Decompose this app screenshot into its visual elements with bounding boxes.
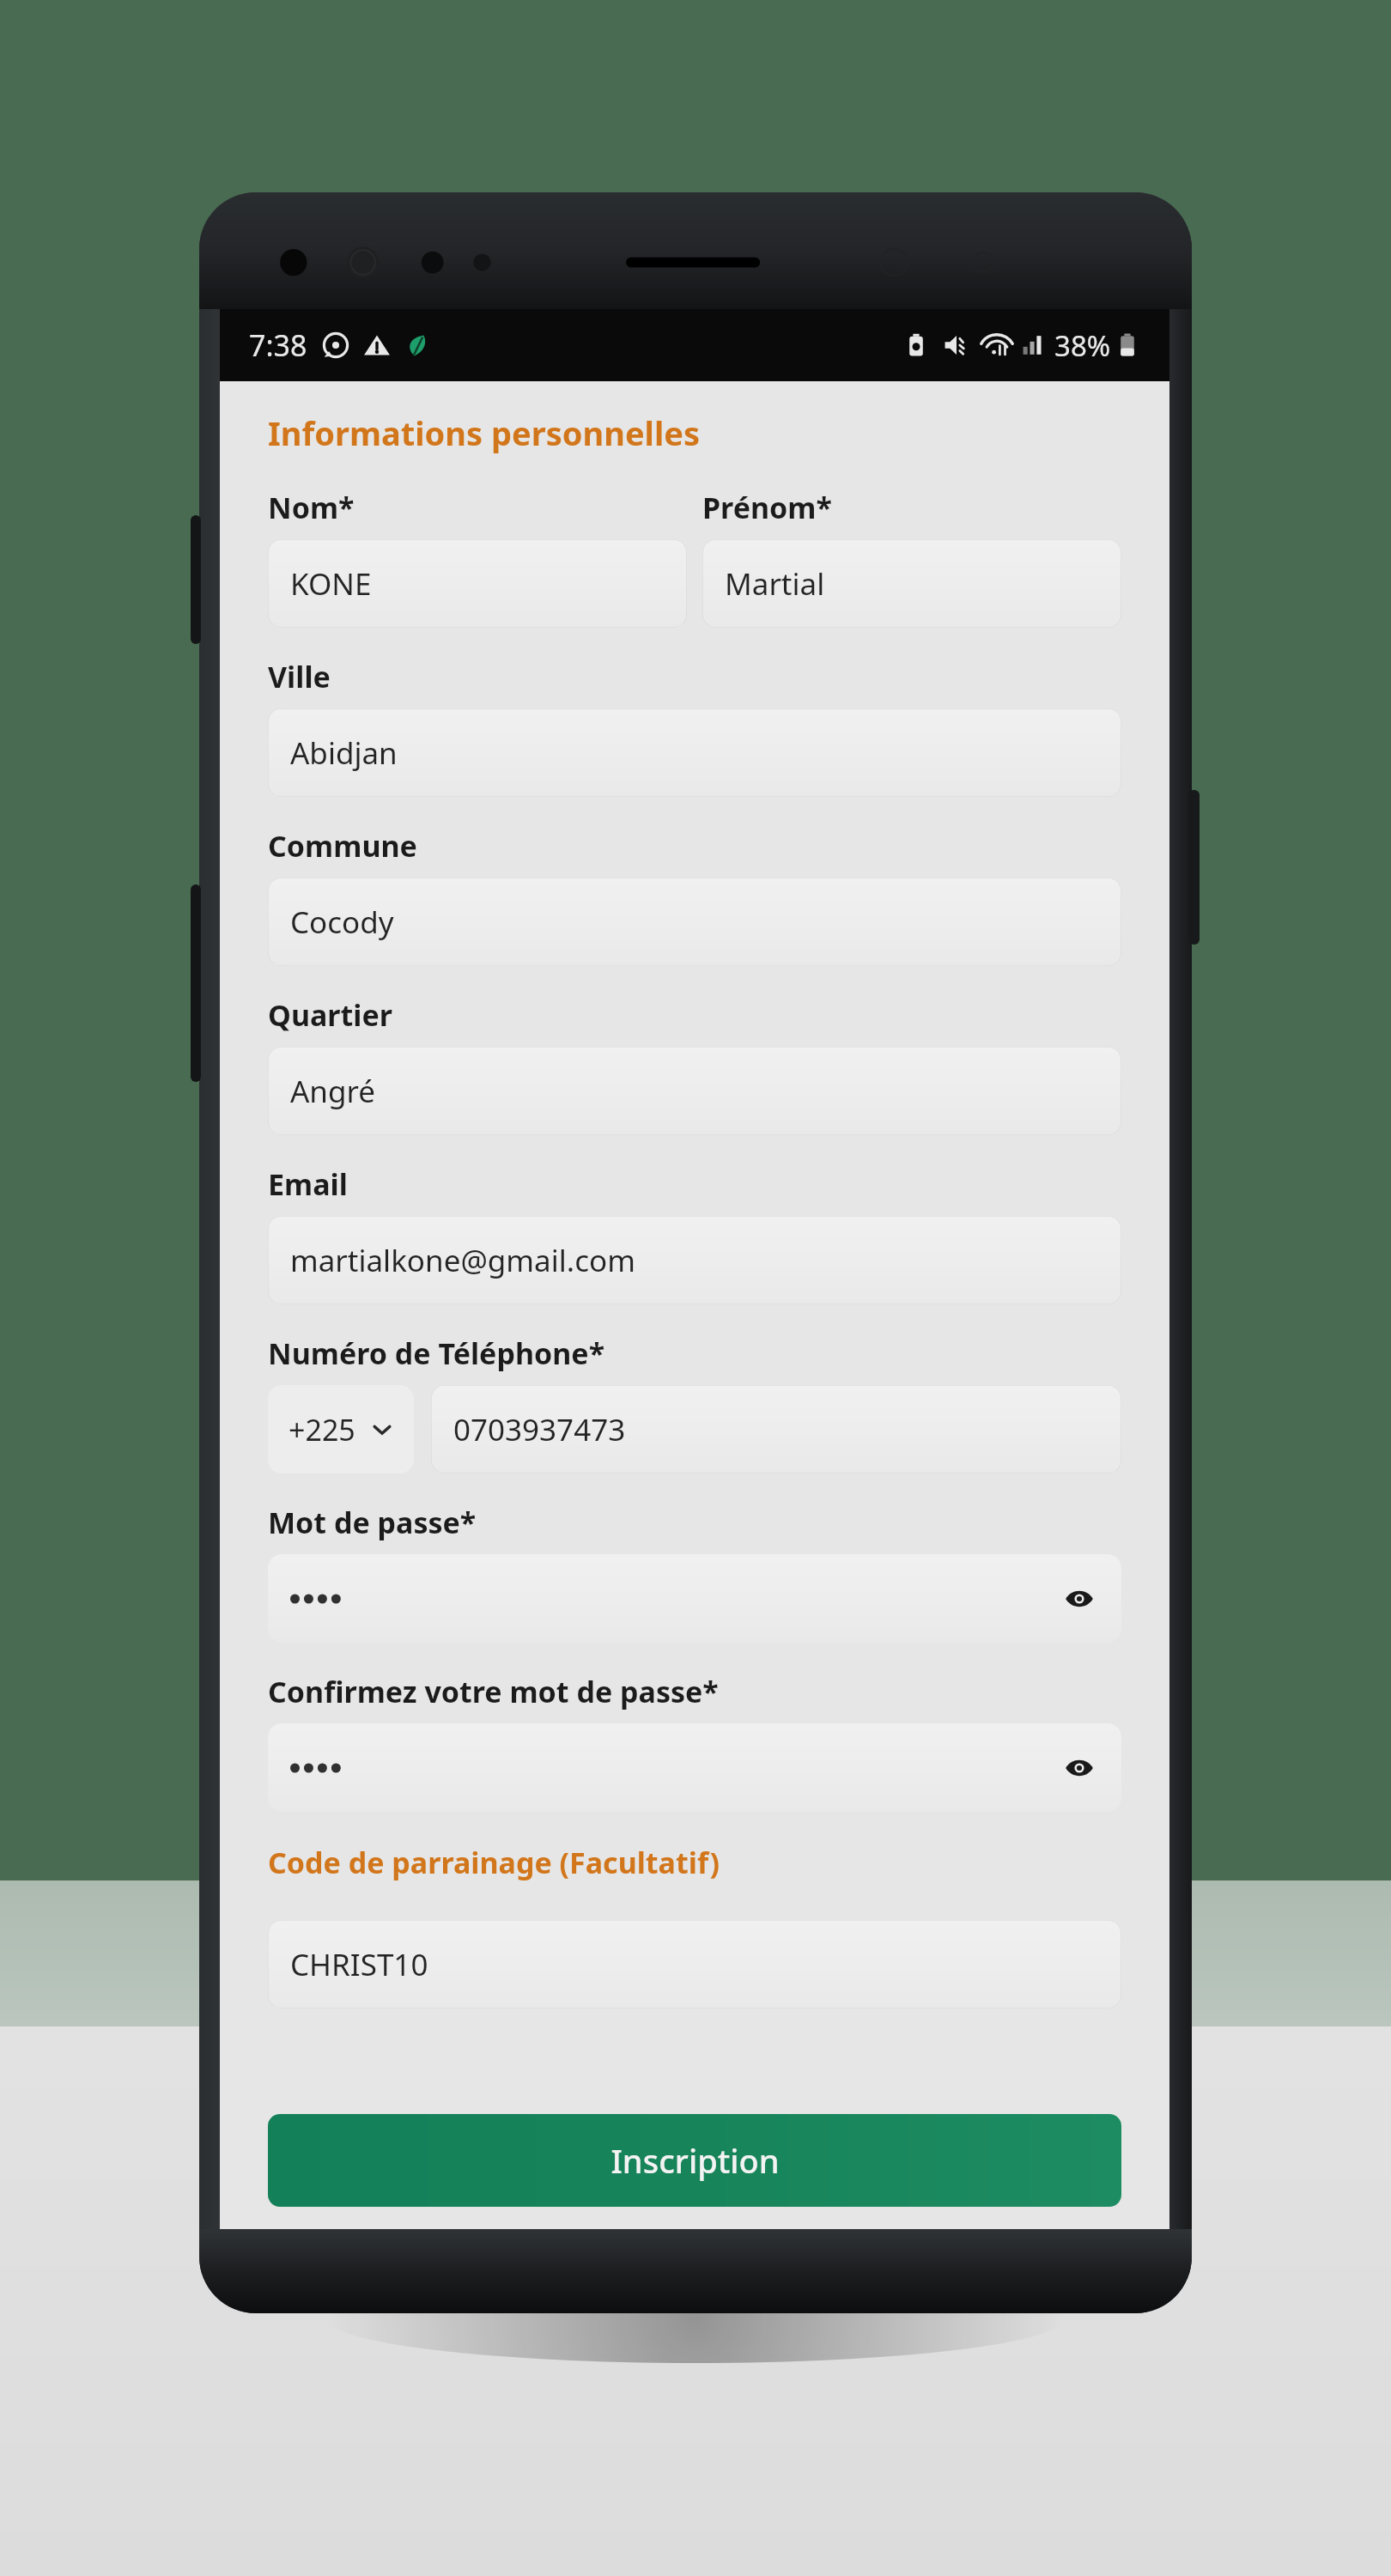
- button[interactable]: Afficher le mot de passe: [268, 1723, 1121, 1812]
- staticText: Prénom*: [702, 488, 832, 527]
- button[interactable]: Afficher le mot de passe: [268, 1554, 1121, 1643]
- staticText: CHRIST10: [290, 1944, 428, 1985]
- button[interactable]: Angré: [268, 1047, 1121, 1135]
- button[interactable]: Afficher le mot de passe: [1060, 1748, 1099, 1788]
- staticText: martialkone@gmail.com: [290, 1240, 635, 1281]
- staticText: Abidjan: [290, 732, 398, 774]
- staticText: 38%: [1054, 326, 1111, 365]
- button[interactable]: Afficher le mot de passe: [1060, 1579, 1099, 1619]
- staticText: Confirmez votre mot de passe*: [268, 1672, 719, 1711]
- staticText: Mot de passe*: [268, 1503, 477, 1542]
- button[interactable]: Cocody: [268, 878, 1121, 966]
- staticText: Nom*: [268, 488, 355, 527]
- button[interactable]: martialkone@gmail.com: [268, 1216, 1121, 1304]
- staticText: Code de parrainage (Facultatif): [268, 1843, 720, 1882]
- button[interactable]: +225: [268, 1385, 414, 1473]
- button[interactable]: Abidjan: [268, 708, 1121, 797]
- staticText: KONE: [290, 563, 372, 605]
- staticText: Email: [268, 1164, 348, 1204]
- staticText: Informations personnelles: [268, 410, 701, 455]
- staticText: 7:38: [249, 325, 307, 365]
- staticText: 0703937473: [453, 1409, 626, 1450]
- staticText: Cocody: [290, 902, 394, 943]
- staticText: Numéro de Téléphone*: [268, 1334, 605, 1373]
- staticText: +225: [289, 1410, 355, 1449]
- button[interactable]: 0703937473: [431, 1385, 1121, 1473]
- staticText: Ville: [268, 657, 331, 696]
- staticText: Angré: [290, 1071, 376, 1112]
- button[interactable]: Martial: [702, 539, 1121, 628]
- staticText: Martial: [725, 563, 825, 605]
- button[interactable]: Inscription: [268, 2114, 1121, 2207]
- staticText: Inscription: [610, 2138, 780, 2183]
- button[interactable]: KONE: [268, 539, 687, 628]
- staticText: Commune: [268, 826, 417, 866]
- button[interactable]: CHRIST10: [268, 1920, 1121, 2008]
- staticText: Quartier: [268, 995, 392, 1035]
